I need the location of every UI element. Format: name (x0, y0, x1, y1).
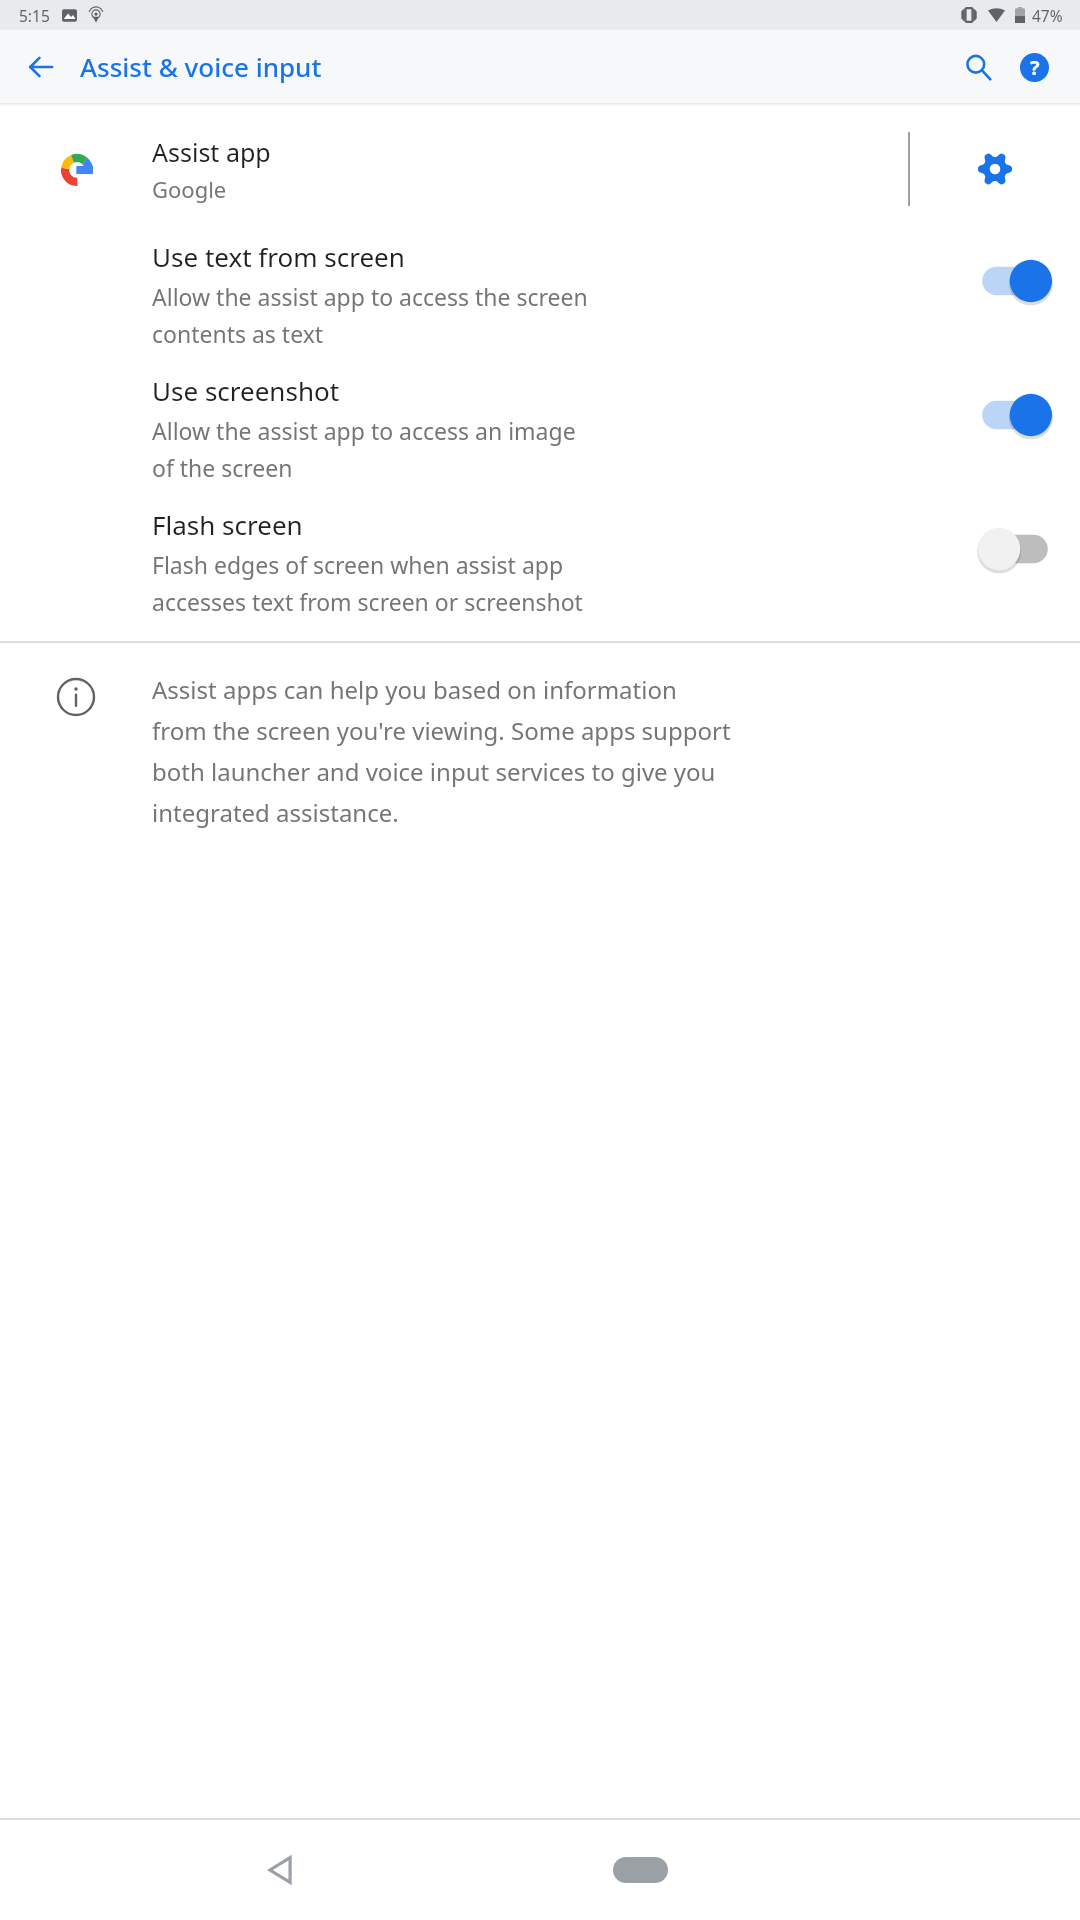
staticText: contents as text (152, 318, 324, 349)
button[interactable]: Assist app (0, 123, 1080, 215)
staticText: Use screenshot (152, 373, 340, 408)
button[interactable]: Use screenshot (972, 391, 1058, 439)
staticText: integrated assistance. (152, 796, 399, 829)
button[interactable]: Home (585, 1835, 695, 1905)
staticText: Assist apps can help you based on inform… (152, 673, 677, 706)
staticText: from the screen you're viewing. Some app… (152, 714, 731, 747)
staticText: Allow the assist app to access an image (152, 415, 576, 446)
button[interactable]: Help (1006, 39, 1062, 95)
staticText: of the screen (152, 452, 293, 483)
button[interactable]: Use text from screen (972, 257, 1058, 305)
staticText: accesses text from screen or screenshot (152, 586, 583, 617)
button[interactable]: Flash screen (0, 507, 1080, 617)
staticText: Google (152, 174, 227, 204)
staticText: Flash screen (152, 507, 303, 542)
button[interactable]: Back (14, 40, 68, 94)
staticText: 47% (1032, 5, 1063, 26)
button[interactable]: Search (950, 39, 1006, 95)
staticText: ? (1030, 54, 1040, 81)
staticText: Flash edges of screen when assist app (152, 549, 564, 580)
button[interactable]: Use screenshot (0, 373, 1080, 483)
button[interactable]: Back (240, 1830, 320, 1910)
staticText: both launcher and voice input services t… (152, 755, 716, 788)
staticText: Assist app (152, 135, 271, 169)
button[interactable]: Flash screen (972, 525, 1058, 573)
staticText: Use text from screen (152, 239, 405, 274)
button[interactable]: Assist app settings (910, 123, 1080, 215)
button[interactable]: Use text from screen (0, 239, 1080, 349)
staticText: Assist & voice input (80, 49, 322, 84)
staticText: Allow the assist app to access the scree… (152, 281, 588, 312)
staticText: 5:15 (19, 5, 50, 26)
